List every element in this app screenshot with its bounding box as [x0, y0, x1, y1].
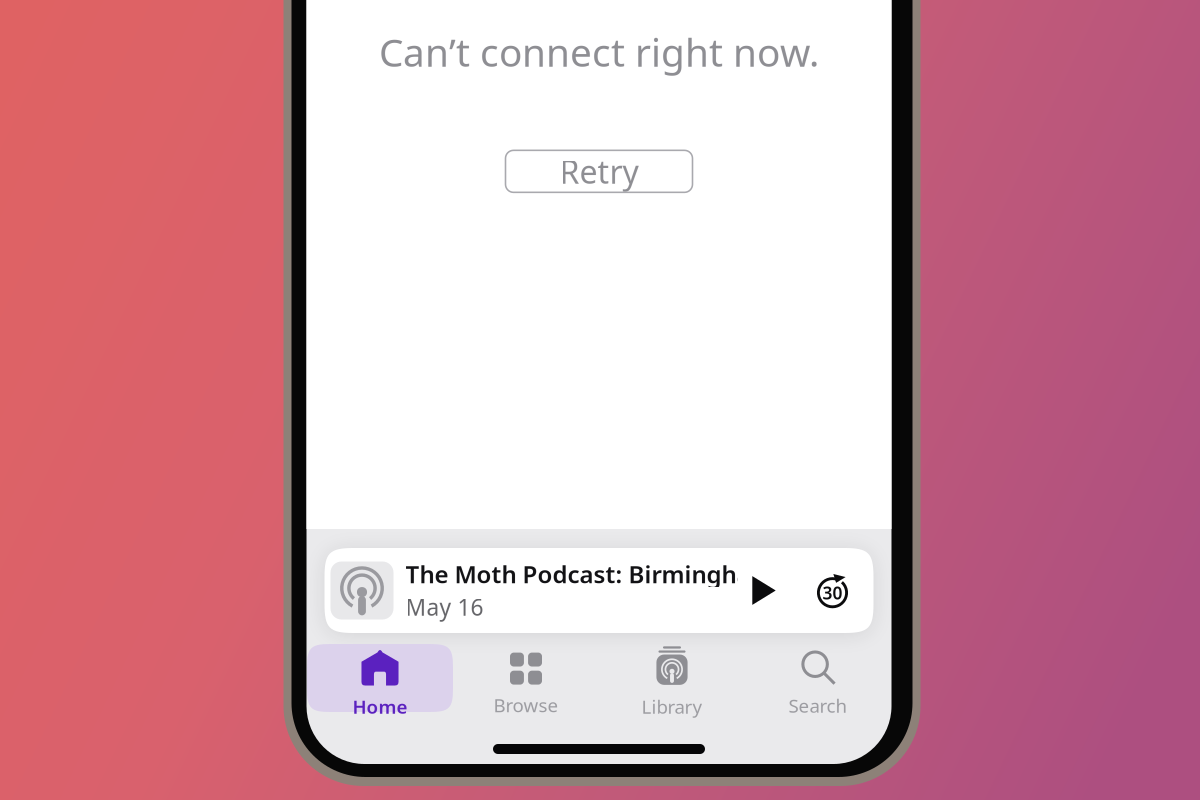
staticText: The Moth Podcast: Birmingham — [405, 558, 773, 590]
button[interactable]: Library — [599, 644, 745, 712]
staticText: Browse — [493, 693, 558, 717]
button[interactable]: The Moth Podcast: Birmingham — [324, 548, 873, 633]
staticText: May 16 — [405, 592, 483, 622]
staticText: Library — [641, 694, 702, 719]
staticText: Can’t connect right now. — [379, 26, 819, 77]
button[interactable]: Browse — [453, 644, 599, 712]
staticText: Home — [352, 694, 407, 719]
staticText: Retry — [559, 150, 638, 193]
button[interactable]: Home — [307, 644, 453, 712]
staticText: 30 — [822, 581, 842, 604]
button[interactable]: Search — [745, 644, 891, 712]
button[interactable]: Retry — [505, 150, 692, 192]
staticText: Search — [788, 693, 847, 718]
